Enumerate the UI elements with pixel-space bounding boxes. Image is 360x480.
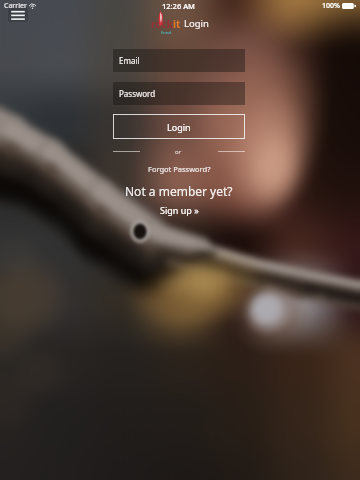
button[interactable]: Email (113, 49, 245, 72)
staticText: 100% (322, 1, 340, 11)
staticText: rock (151, 17, 173, 31)
staticText: Login (184, 17, 209, 30)
button[interactable]: Password (113, 82, 245, 105)
staticText: 12:26 AM (162, 1, 195, 11)
staticText: it (173, 17, 181, 31)
staticText: or (175, 148, 182, 156)
staticText: Sign up » (160, 204, 199, 216)
button[interactable]: Forgot Password? (148, 164, 211, 174)
staticText: fund (161, 30, 172, 34)
staticText: Login (167, 121, 191, 133)
staticText: Not a member yet? (125, 183, 233, 199)
staticText: Password (119, 88, 156, 99)
staticText: Email (119, 55, 140, 66)
staticText: Forgot Password? (148, 164, 211, 174)
staticText: Carrier (4, 1, 27, 11)
button[interactable]: Menu (8, 8, 28, 22)
button[interactable]: Login (113, 114, 245, 139)
button[interactable]: Sign up » (160, 204, 199, 216)
